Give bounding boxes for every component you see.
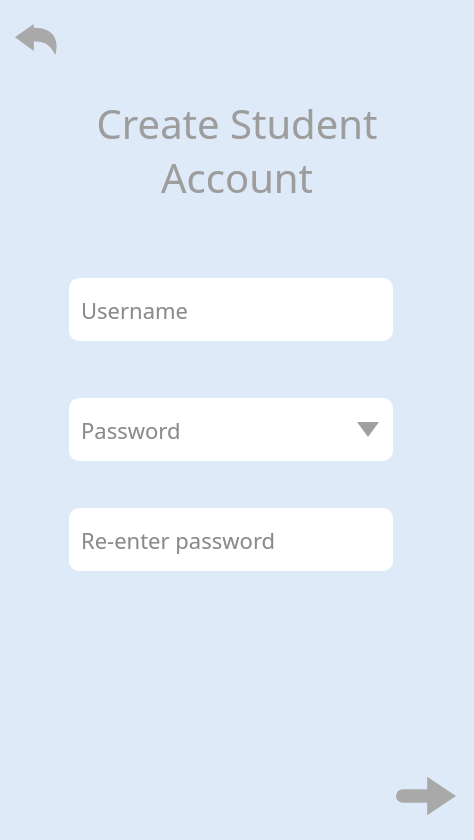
other: Show password options: [357, 422, 379, 437]
button[interactable]: Re-enter password: [69, 508, 393, 571]
staticText: Create Student Account: [16, 96, 458, 840]
staticText: Password: [81, 415, 181, 445]
staticText: Username: [81, 295, 189, 325]
staticText: Re-enter password: [81, 525, 276, 555]
button[interactable]: Username: [69, 278, 393, 341]
button[interactable]: Password: [69, 398, 393, 461]
button[interactable]: Next: [390, 760, 462, 832]
button[interactable]: Back: [6, 8, 66, 68]
